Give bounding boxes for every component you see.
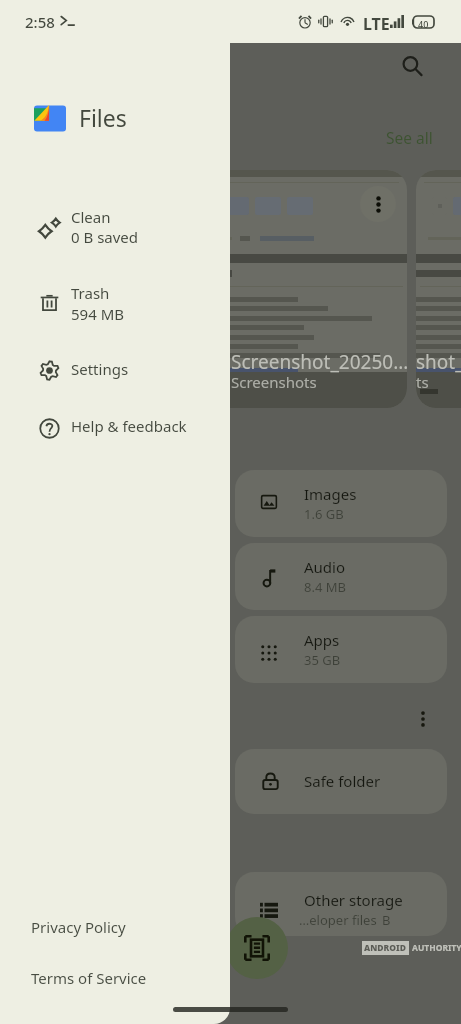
staticText: 0 B saved <box>71 227 139 247</box>
button[interactable]: Scan document <box>226 917 288 979</box>
button[interactable]: Audio <box>235 543 447 610</box>
button[interactable]: Privacy Policy <box>24 913 133 941</box>
staticText: 40 <box>418 18 429 30</box>
staticText: shot_2 <box>416 349 461 375</box>
button[interactable]: Apps <box>235 616 447 683</box>
button[interactable]: Screenshot options <box>360 186 396 222</box>
staticText: ANDROID <box>364 942 407 954</box>
staticText: Apps <box>304 630 340 650</box>
staticText: …eloper files <box>299 911 377 929</box>
staticText: 8.4 MB <box>304 578 346 596</box>
staticText: LTE <box>363 13 390 35</box>
staticText: Help & feedback <box>71 416 187 436</box>
staticText: See all <box>386 127 433 148</box>
button[interactable]: See all <box>380 121 439 154</box>
staticText: Audio <box>304 557 346 577</box>
button[interactable]: Screenshot_20250… <box>186 170 407 408</box>
staticText: 2:58 <box>25 12 55 32</box>
staticText: Settings <box>71 359 129 379</box>
button[interactable]: Safe folder <box>235 749 447 814</box>
staticText: B <box>382 911 391 929</box>
staticText: Clean <box>71 207 111 227</box>
staticText: Terms of Service <box>31 968 147 988</box>
button[interactable]: shot_2 <box>416 170 461 408</box>
staticText: Screenshot_20250… <box>231 349 407 375</box>
button[interactable]: More options <box>407 703 439 735</box>
button[interactable]: Images <box>235 470 447 537</box>
staticText: 1.6 GB <box>304 505 344 523</box>
staticText: Other storage <box>304 890 403 910</box>
staticText: Images <box>304 484 357 504</box>
staticText: 35 GB <box>304 651 341 669</box>
staticText: Screenshots <box>231 372 317 392</box>
staticText: Files <box>79 102 127 133</box>
staticText: AUTHORITY <box>412 942 461 954</box>
button[interactable]: Search <box>395 49 429 83</box>
button[interactable]: Other storage <box>235 872 447 936</box>
button[interactable]: Clean <box>0 204 230 252</box>
button[interactable]: Settings <box>0 346 230 394</box>
staticText: Trash <box>71 283 110 303</box>
staticText: Safe folder <box>304 771 381 791</box>
staticText: Privacy Policy <box>31 917 126 937</box>
staticText: ts <box>416 372 429 392</box>
button[interactable]: Help & feedback <box>0 404 230 452</box>
button[interactable]: Terms of Service <box>24 964 154 992</box>
staticText: 594 MB <box>71 304 124 324</box>
button[interactable]: Trash <box>0 278 230 326</box>
